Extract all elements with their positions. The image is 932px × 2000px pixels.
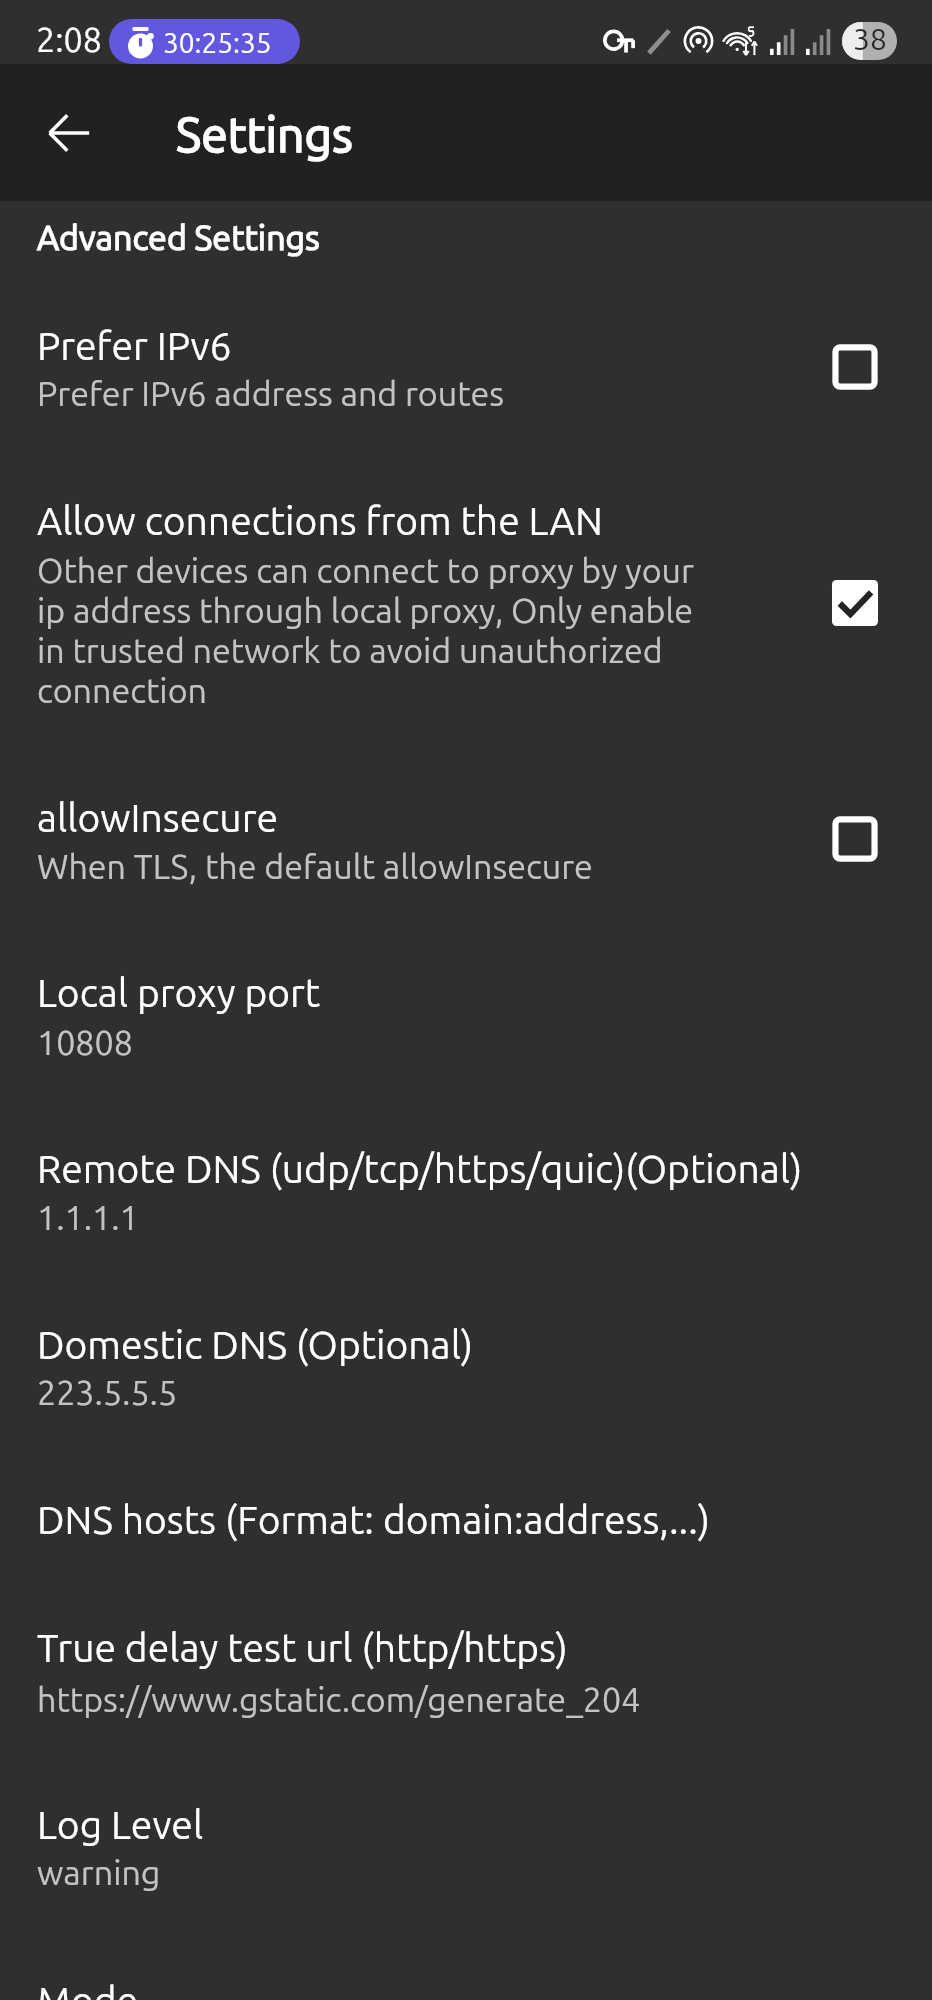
staticText: Advanced Settings (37, 218, 320, 259)
staticText: Allow connections from the LAN (37, 498, 603, 545)
other: Hotspot (683, 27, 714, 55)
staticText: Prefer IPv6 (37, 323, 232, 370)
staticText: 2:08 (36, 20, 102, 61)
button[interactable]: Mode (0, 1950, 932, 2000)
other: VPN key (603, 31, 635, 53)
button[interactable]: Disabled (816, 800, 894, 878)
button[interactable]: allowInsecure (0, 766, 932, 906)
other: Mobile signal (806, 29, 831, 55)
staticText: Remote DNS (udp/tcp/https/quic)(Optional… (37, 1146, 803, 1193)
staticText: warning (37, 1853, 161, 1894)
button[interactable]: Domestic DNS (Optional) (0, 1294, 932, 1422)
staticText: Settings (176, 107, 353, 165)
button[interactable]: Timer 30:25:35 (109, 19, 300, 64)
staticText: 223.5.5.5 (37, 1373, 178, 1414)
staticText: Log Level (37, 1802, 204, 1849)
button[interactable]: Local proxy port (0, 942, 932, 1070)
staticText: Other devices can connect to proxy by yo… (37, 551, 694, 712)
button[interactable]: Prefer IPv6 (0, 294, 932, 434)
button[interactable]: True delay test url (http/https) (0, 1597, 932, 1725)
staticText: 30:25:35 (163, 27, 272, 61)
button[interactable]: Disabled (816, 328, 894, 406)
button[interactable]: Log Level (0, 1774, 932, 1902)
button[interactable]: Remote DNS (udp/tcp/https/quic)(Optional… (0, 1118, 932, 1246)
staticText: allowInsecure (37, 795, 278, 842)
button[interactable]: Navigate up (36, 100, 102, 166)
button[interactable]: DNS hosts (Format: domain:address,...) (0, 1469, 932, 1597)
staticText: Local proxy port (37, 970, 321, 1017)
staticText: DNS hosts (Format: domain:address,...) (37, 1497, 711, 1544)
staticText: When TLS, the default allowInsecure (37, 847, 593, 888)
other: Edit (645, 27, 673, 56)
staticText: Domestic DNS (Optional) (37, 1322, 474, 1369)
staticText: 1.1.1.1 (37, 1198, 139, 1239)
staticText: 10808 (37, 1023, 133, 1064)
staticText: 38 (853, 22, 887, 58)
staticText: True delay test url (http/https) (37, 1625, 568, 1672)
staticText: https://www.gstatic.com/generate_204 (37, 1680, 641, 1721)
other: Wi-Fi (724, 26, 764, 56)
other: Mobile signal (770, 29, 795, 55)
button[interactable]: Enabled (816, 564, 894, 642)
staticText: Mode (37, 1978, 139, 2000)
staticText: Prefer IPv6 address and routes (37, 374, 504, 415)
button[interactable]: Allow connections from the LAN (0, 470, 932, 720)
